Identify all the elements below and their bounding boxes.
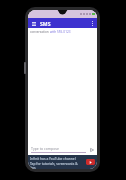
button[interactable]: Type to compose — [31, 146, 86, 153]
staticText: Tap for tutorials, screencasts & tips — [30, 161, 84, 169]
button[interactable]: Send — [88, 146, 95, 153]
button[interactable]: Infinit has a YouTube channel — [28, 155, 97, 169]
button[interactable]: Watch on YouTube — [86, 159, 95, 165]
staticText: Type to compose — [31, 146, 59, 151]
button[interactable]: More options — [90, 19, 95, 28]
staticText: SMS — [40, 20, 51, 27]
staticText: with 555-0123 — [50, 30, 71, 34]
button[interactable]: Open navigation drawer — [30, 20, 37, 27]
staticText: Infinit has a YouTube channel — [30, 156, 76, 160]
staticText: conversation — [30, 30, 50, 34]
